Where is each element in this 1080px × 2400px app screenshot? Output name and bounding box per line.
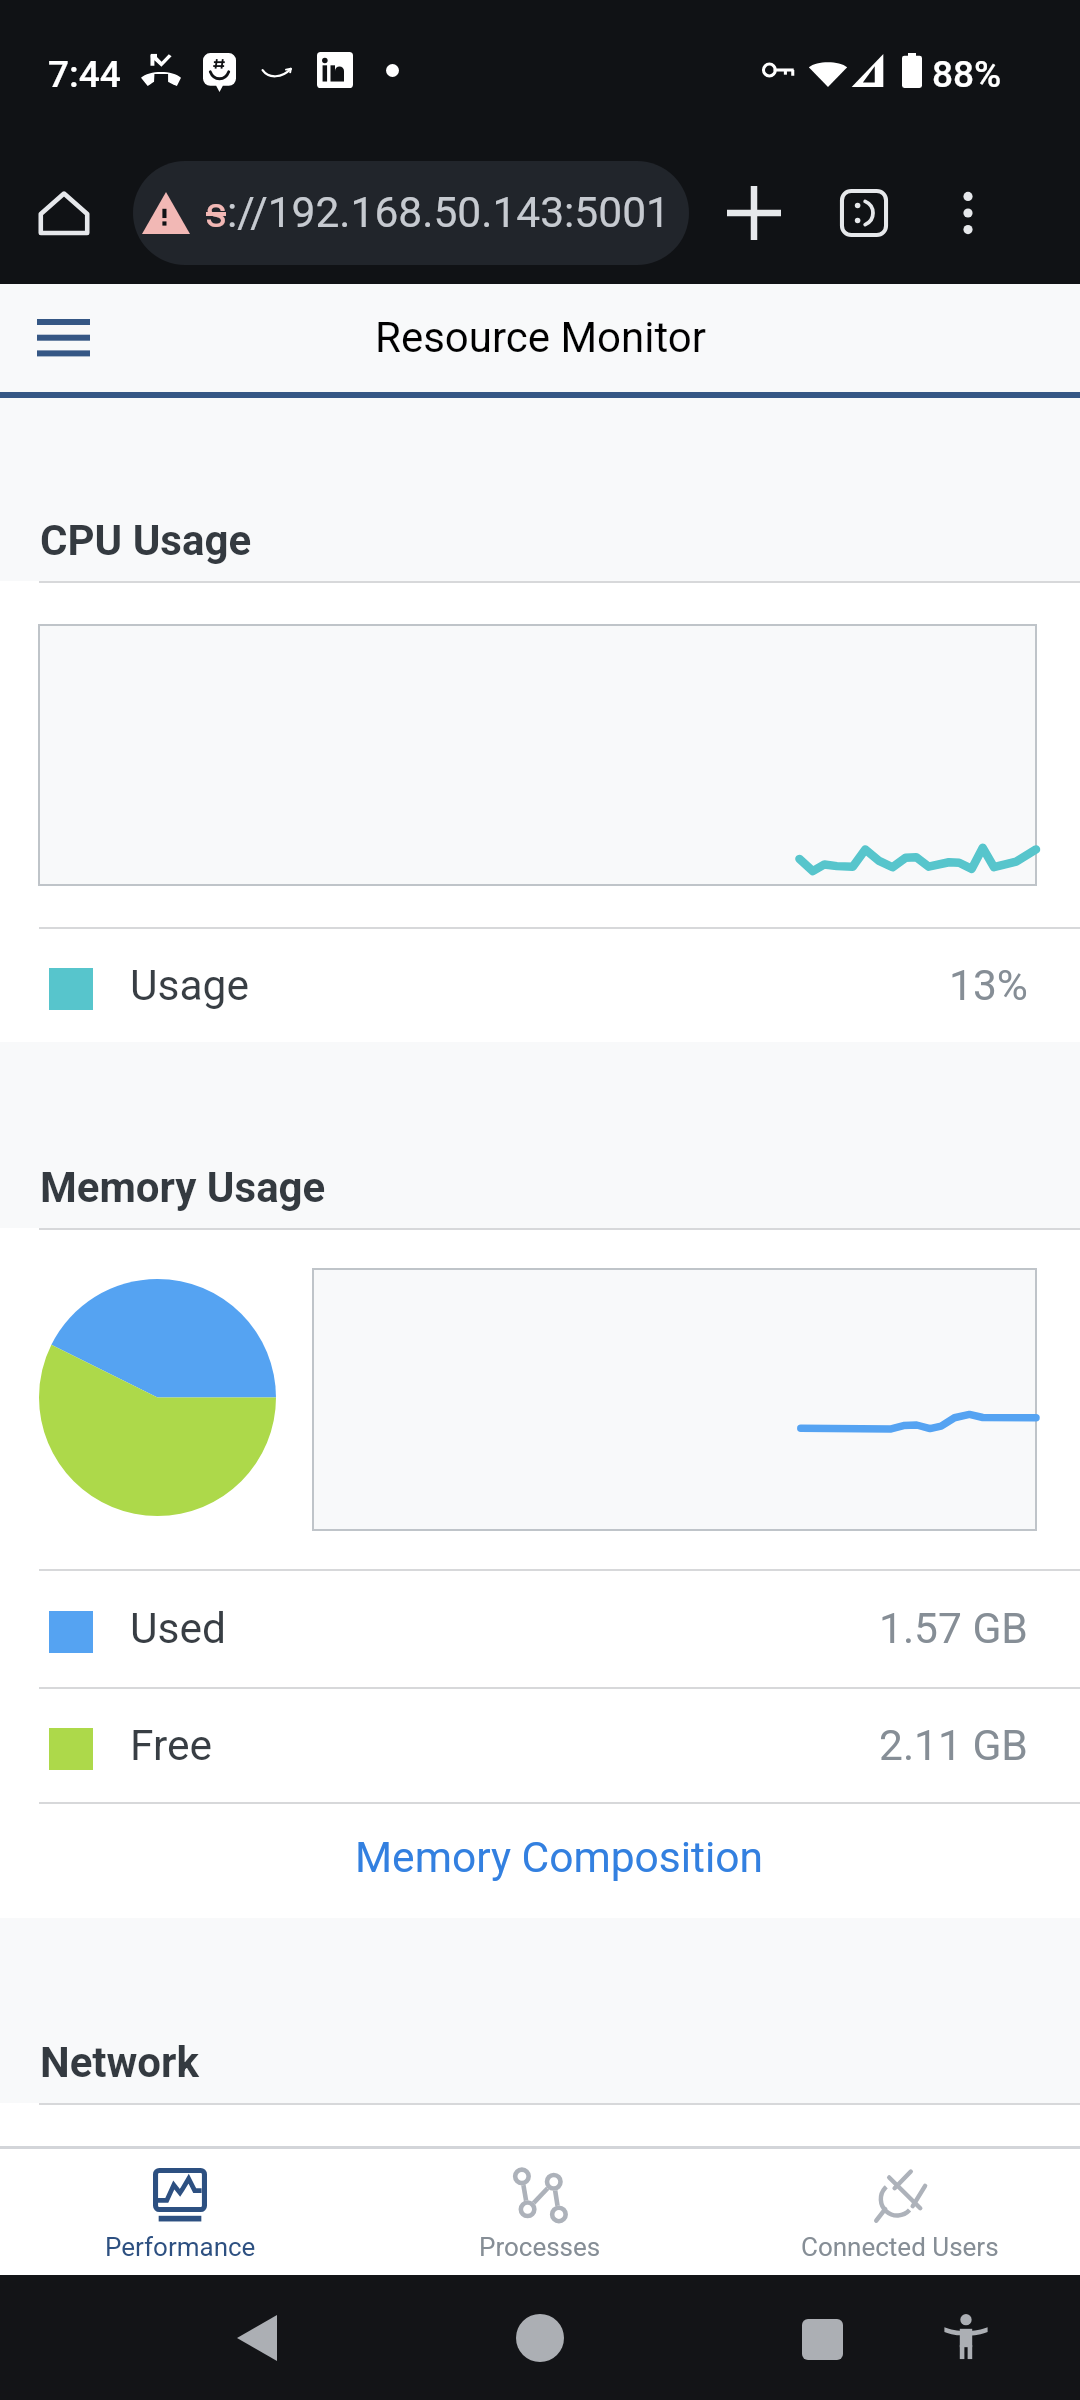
staticText: 2.11 GB <box>879 1721 1028 1771</box>
staticText: Network <box>40 2038 199 2087</box>
staticText: Memory Usage <box>40 1163 326 1212</box>
staticText: Free <box>130 1721 213 1771</box>
staticText: Used <box>130 1604 226 1654</box>
button[interactable]: Accessibility <box>921 2293 1011 2383</box>
button[interactable]: Back <box>212 2293 302 2383</box>
button[interactable]: Performance <box>0 2149 360 2275</box>
button[interactable]: Usage <box>0 929 1080 1042</box>
button[interactable]: Processes <box>360 2149 720 2275</box>
button[interactable]: Connected Users <box>720 2149 1080 2275</box>
staticText: Processes <box>479 2232 601 2262</box>
button[interactable]: New tab <box>713 172 795 254</box>
staticText: 13% <box>949 961 1028 1011</box>
staticText: Memory Composition <box>355 1833 764 1883</box>
staticText: Performance <box>105 2232 256 2262</box>
staticText: s <box>205 188 227 238</box>
staticText: 1.57 GB <box>879 1604 1028 1654</box>
staticText: 88% <box>932 53 1002 96</box>
button[interactable]: Home <box>26 175 102 251</box>
staticText: Connected Users <box>801 2232 999 2262</box>
staticText: 7:44 <box>48 53 121 96</box>
button[interactable]: Tabs <box>823 172 905 254</box>
button[interactable]: More options <box>927 172 1009 254</box>
staticText: Resource Monitor <box>375 313 706 362</box>
staticText: CPU Usage <box>40 516 252 565</box>
button[interactable]: Memory Composition <box>0 1804 1080 1918</box>
button[interactable]: s <box>133 161 689 265</box>
button[interactable]: Used <box>0 1571 1080 1687</box>
button[interactable]: Home <box>495 2293 585 2383</box>
button[interactable]: Recents <box>777 2293 867 2383</box>
staticText: ://192.168.50.143:5001 <box>227 188 669 238</box>
button[interactable]: Menu <box>25 299 101 375</box>
button[interactable]: Free <box>0 1689 1080 1802</box>
staticText: Usage <box>130 961 250 1011</box>
